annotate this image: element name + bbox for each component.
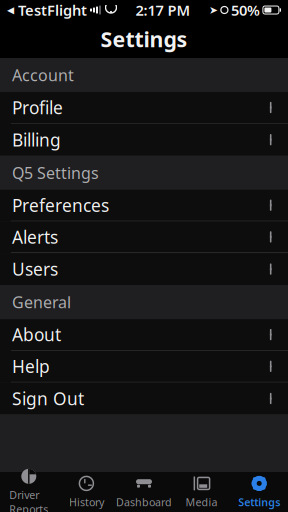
button[interactable]: Help xyxy=(0,351,288,382)
staticText: History xyxy=(69,495,104,509)
staticText: Account xyxy=(12,64,74,86)
staticText: Driver Reports xyxy=(9,488,48,512)
button[interactable]: Settings xyxy=(230,472,288,512)
staticText: 2:17 PM xyxy=(135,0,190,20)
staticText: Settings xyxy=(100,25,187,53)
button[interactable]: Users xyxy=(0,253,288,285)
staticText: Settings xyxy=(238,495,280,509)
staticText: Profile xyxy=(12,96,63,119)
staticText: Sign Out xyxy=(12,387,84,410)
staticText: ◀ xyxy=(7,5,14,15)
button[interactable]: Driver Reports xyxy=(0,472,58,512)
button[interactable]: Dashboard xyxy=(115,472,173,512)
button[interactable]: Profile xyxy=(0,92,288,124)
staticText: Media xyxy=(186,495,218,509)
staticText: Help xyxy=(12,355,50,378)
button[interactable]: Media xyxy=(173,472,230,512)
staticText: General xyxy=(12,291,71,313)
button[interactable]: Billing xyxy=(0,124,288,156)
staticText: Billing xyxy=(12,128,61,151)
button[interactable]: History xyxy=(58,472,115,512)
staticText: ➤ xyxy=(209,4,218,16)
staticText: Q5 Settings xyxy=(12,162,99,183)
button[interactable]: Sign Out xyxy=(0,382,288,414)
button[interactable]: Alerts xyxy=(0,221,288,253)
staticText: Preferences xyxy=(12,194,109,217)
staticText: Dashboard xyxy=(116,495,172,509)
staticText: 50% xyxy=(231,0,260,20)
staticText: About xyxy=(12,323,61,346)
button[interactable]: About xyxy=(0,319,288,351)
staticText: Users xyxy=(12,258,58,281)
staticText: Alerts xyxy=(12,225,58,248)
button[interactable]: Preferences xyxy=(0,190,288,221)
staticText: TestFlight xyxy=(14,0,87,20)
